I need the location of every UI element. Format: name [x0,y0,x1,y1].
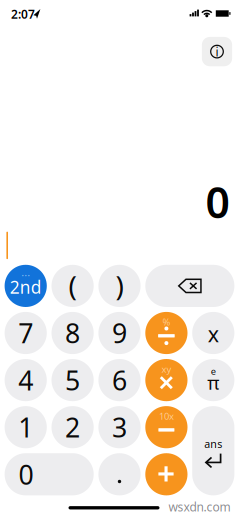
button[interactable]: Multiply [145,359,187,401]
button[interactable]: Decimal point [98,453,141,495]
staticText: 8 [65,315,80,351]
staticText: 9 [112,315,127,351]
button[interactable]: Divide [145,312,187,354]
staticText: 1 [18,409,33,445]
staticText: 10x [159,410,174,422]
button[interactable]: 3 [98,406,141,448]
button[interactable]: e [192,359,234,401]
staticText: 2 [65,409,80,445]
button[interactable]: ans [192,406,234,495]
button[interactable]: 1 [5,406,47,448]
staticText: ans [204,437,222,451]
staticText: 4 [18,362,33,398]
button[interactable]: Add [145,453,187,495]
staticText: i [215,44,218,60]
button[interactable]: ( [51,265,94,307]
staticText: e [211,365,216,377]
staticText: π [207,370,219,395]
staticText: 3 [112,409,127,445]
staticText: 7 [18,315,33,351]
staticText: 0 [19,457,34,492]
staticText: • • • [22,272,30,279]
staticText: 2:07 [11,6,35,22]
staticText: ( [69,267,77,304]
staticText: 5 [65,362,80,398]
staticText: 2nd [10,275,42,298]
button[interactable]: 8 [51,312,94,354]
staticText: x [208,320,219,348]
staticText: % [162,316,170,328]
button[interactable]: 7 [5,312,47,354]
staticText: 6 [112,362,127,398]
button[interactable]: Subtract [145,406,187,448]
button[interactable]: Delete [145,265,234,307]
staticText: xy [161,363,171,375]
button[interactable]: • • • [5,265,47,307]
button[interactable]: 5 [51,359,94,401]
button[interactable]: 0 [5,453,94,495]
button[interactable]: 2 [51,406,94,448]
staticText: 0 [205,173,229,230]
button[interactable]: 9 [98,312,141,354]
staticText: ) [115,267,123,304]
button[interactable]: x [192,312,234,354]
button[interactable]: Info [202,37,232,66]
staticText: wsxdn.com [168,499,230,515]
button[interactable]: ) [98,265,141,307]
button[interactable]: 6 [98,359,141,401]
button[interactable]: 4 [5,359,47,401]
